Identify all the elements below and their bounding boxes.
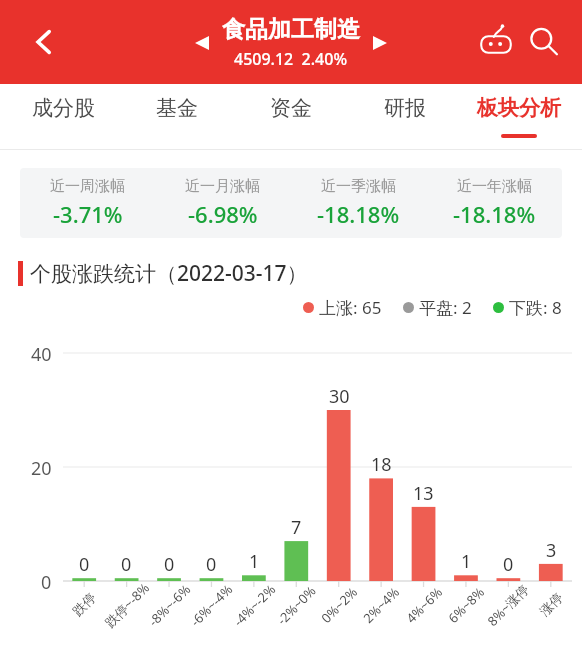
staticText: 1 xyxy=(461,549,472,574)
button[interactable]: AI assistant xyxy=(472,18,520,66)
button[interactable]: Search xyxy=(520,18,568,66)
staticText: -2%~0% xyxy=(273,581,320,629)
staticText: 研报 xyxy=(384,95,426,121)
staticText: 近一季涨幅 xyxy=(321,177,396,196)
button[interactable]: 平盘: 2 xyxy=(403,296,472,319)
staticText: 近一周涨幅 xyxy=(50,177,125,196)
button[interactable]: 近一年涨幅 xyxy=(426,168,562,238)
staticText: 0 xyxy=(79,552,90,577)
button[interactable]: Back xyxy=(20,18,68,66)
staticText: -18.18% xyxy=(453,199,536,229)
button[interactable]: 近一季涨幅 xyxy=(290,168,426,238)
button[interactable]: 成分股 xyxy=(6,84,120,150)
staticText: 跌停~-8% xyxy=(101,579,153,631)
staticText: 18 xyxy=(371,452,392,477)
staticText: 近一月涨幅 xyxy=(185,177,260,196)
staticText: 0%~2% xyxy=(317,583,361,627)
button[interactable]: Previous sector xyxy=(182,23,222,63)
staticText: -6%~-4% xyxy=(186,580,237,630)
staticText: 0 xyxy=(164,552,175,577)
button[interactable]: 研报 xyxy=(348,84,462,150)
staticText: -3.71% xyxy=(53,199,123,229)
staticText: -8%~-6% xyxy=(144,580,195,630)
staticText: -4%~-2% xyxy=(229,580,280,630)
button[interactable]: 板块分析 xyxy=(462,84,576,150)
staticText: 食品加工制造 xyxy=(222,15,360,44)
button[interactable]: 基金 xyxy=(120,84,234,150)
staticText: 6%~8% xyxy=(444,583,488,627)
staticText: 平盘: 2 xyxy=(419,296,472,319)
button[interactable]: 上涨: 65 xyxy=(303,296,382,319)
staticText: 个股涨跌统计（2022-03-17） xyxy=(30,259,308,288)
staticText: 4%~6% xyxy=(402,583,446,627)
staticText: 上涨: 65 xyxy=(319,296,382,319)
staticText: -6.98% xyxy=(188,199,258,229)
staticText: -18.18% xyxy=(317,199,400,229)
button[interactable]: 下跌: 8 xyxy=(493,296,562,319)
button[interactable]: 资金 xyxy=(234,84,348,150)
staticText: 2%~4% xyxy=(359,583,403,627)
button[interactable]: Next sector xyxy=(360,23,400,63)
staticText: 板块分析 xyxy=(477,95,561,121)
staticText: 资金 xyxy=(270,95,312,121)
staticText: 40 xyxy=(31,342,52,367)
staticText: 涨停 xyxy=(536,589,566,619)
staticText: 20 xyxy=(31,456,52,481)
staticText: 0 xyxy=(206,552,217,577)
staticText: 成分股 xyxy=(32,95,95,121)
staticText: 0 xyxy=(503,552,514,577)
staticText: 4509.12 2.40% xyxy=(234,48,348,70)
staticText: 0 xyxy=(41,570,52,595)
staticText: 7 xyxy=(291,515,302,540)
staticText: 30 xyxy=(329,384,350,409)
staticText: 下跌: 8 xyxy=(509,296,562,319)
staticText: 基金 xyxy=(156,95,198,121)
staticText: 3 xyxy=(546,538,557,563)
staticText: 1 xyxy=(249,549,260,574)
button[interactable]: 近一周涨幅 xyxy=(20,168,155,238)
staticText: 近一年涨幅 xyxy=(457,177,532,196)
staticText: 13 xyxy=(413,481,434,506)
staticText: 跌停 xyxy=(69,589,99,619)
staticText: 0 xyxy=(121,552,132,577)
staticText: 8%~涨停 xyxy=(483,580,533,630)
button[interactable]: 近一月涨幅 xyxy=(155,168,290,238)
